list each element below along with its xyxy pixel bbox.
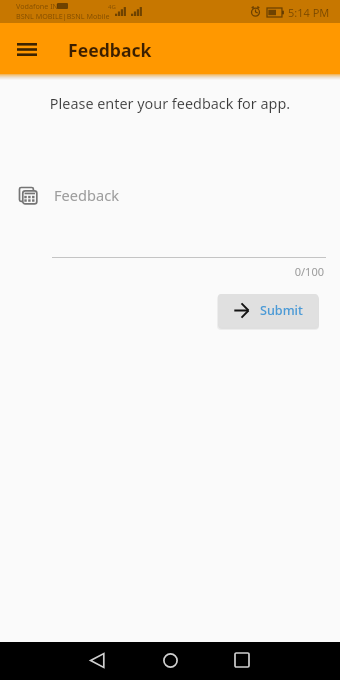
staticText: 5:14 PM (288, 5, 330, 20)
staticText: 0/100 (0, 264, 324, 279)
button[interactable]: Submit (218, 294, 318, 327)
staticText: Feedback (68, 38, 152, 62)
button[interactable]: Back (77, 641, 117, 679)
staticText: Feedback (54, 185, 119, 205)
button[interactable]: Open navigation menu (7, 29, 47, 69)
staticText: BSNL MOBILE|BSNL Mobile (16, 11, 110, 21)
button[interactable]: Recent apps (222, 641, 262, 679)
staticText: Please enter your feedback for app. (0, 94, 340, 114)
staticText: Vodafone IN (16, 1, 59, 11)
staticText: Submit (260, 302, 303, 319)
staticText: 4G (108, 3, 116, 11)
button[interactable]: Home (150, 641, 190, 679)
